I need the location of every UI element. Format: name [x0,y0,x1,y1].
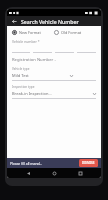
staticText: Please fill all mandatory fields (*) [10,161,44,166]
staticText: DISMISS [82,161,95,165]
button[interactable]: Back [10,17,18,25]
button[interactable]: Inspection type [12,85,96,99]
staticText: Registration Number - [12,57,56,63]
button[interactable]: Home [49,168,59,178]
button[interactable] [77,46,96,53]
button[interactable] [12,46,30,53]
staticText: Search Vehicle Number [21,18,79,25]
staticText: Vehicle number * [12,39,40,44]
staticText: Mild Test [12,73,29,78]
button[interactable]: Vehicle type [12,67,96,81]
button[interactable]: Recent apps [75,168,85,178]
button[interactable]: New Format [12,30,54,35]
staticText: Break-in Inspection (Dual) [12,91,52,96]
staticText: Inspection type [12,85,35,89]
button[interactable] [55,46,74,53]
button[interactable]: Old Format [54,30,96,35]
staticText: New Format [19,30,41,35]
button[interactable]: DISMISS [79,159,98,167]
button[interactable]: Back [23,168,33,178]
staticText: Old Format [61,30,82,35]
staticText: Vehicle type [12,67,30,71]
button[interactable] [33,46,52,53]
